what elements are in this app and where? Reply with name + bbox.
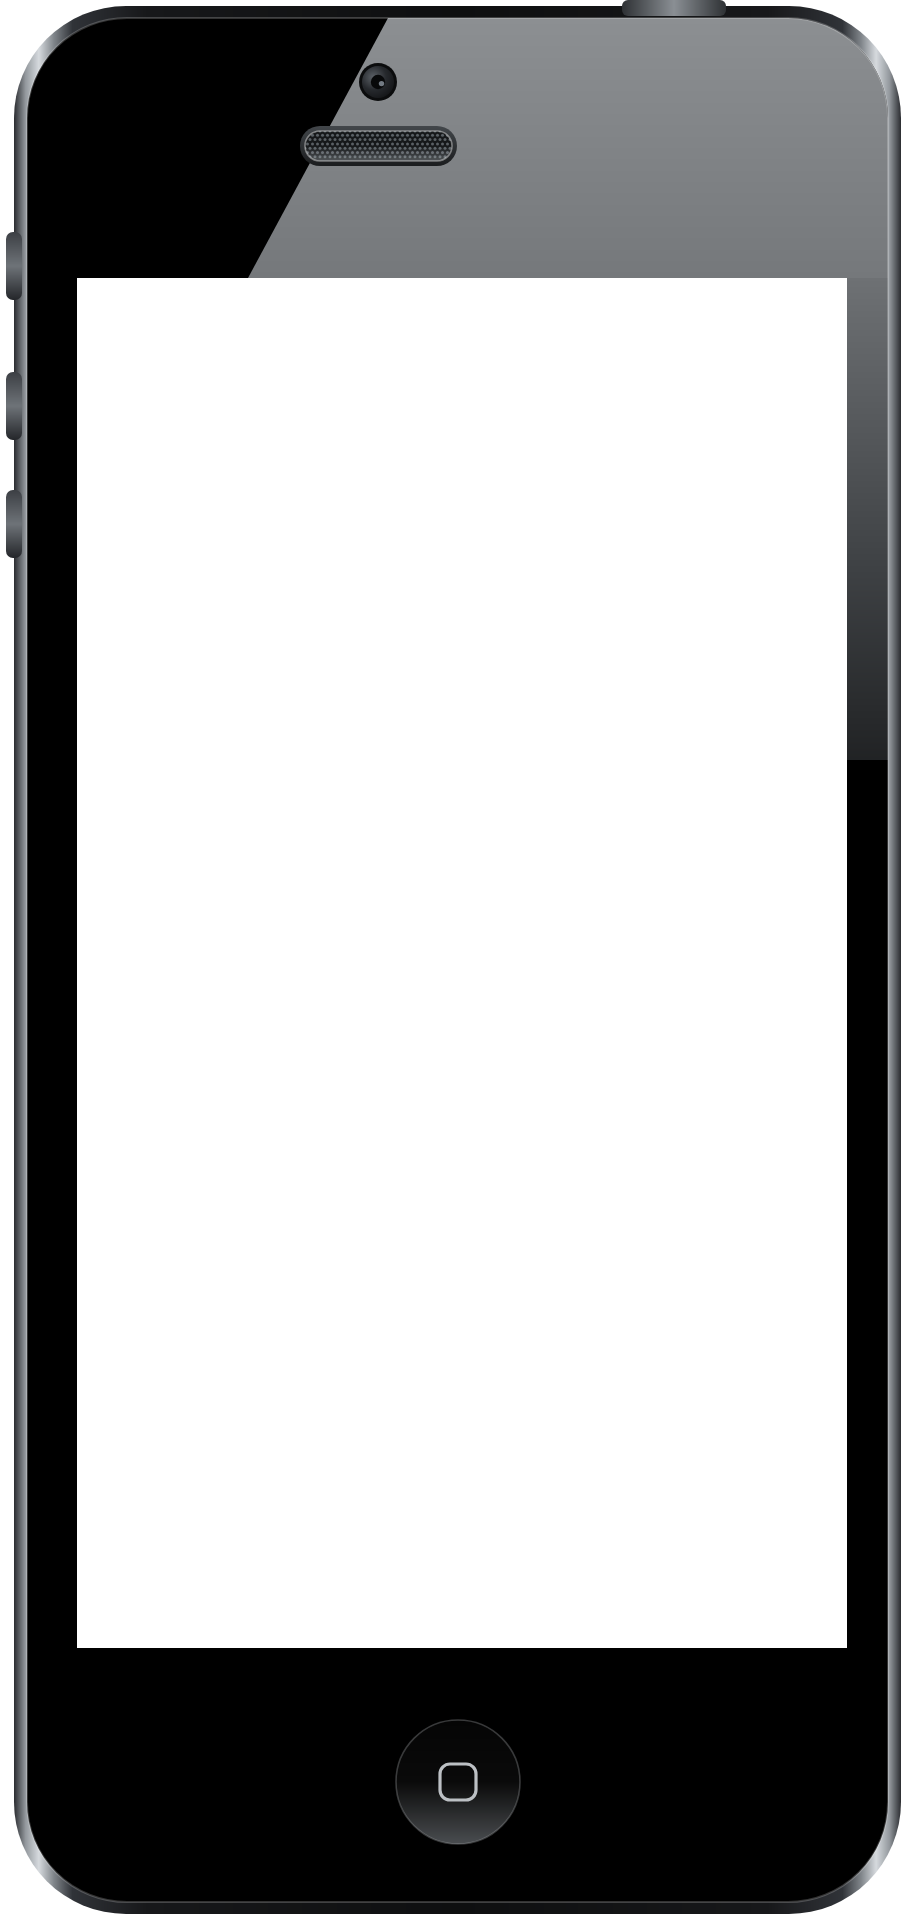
button[interactable]: App screen <box>0 0 915 1920</box>
